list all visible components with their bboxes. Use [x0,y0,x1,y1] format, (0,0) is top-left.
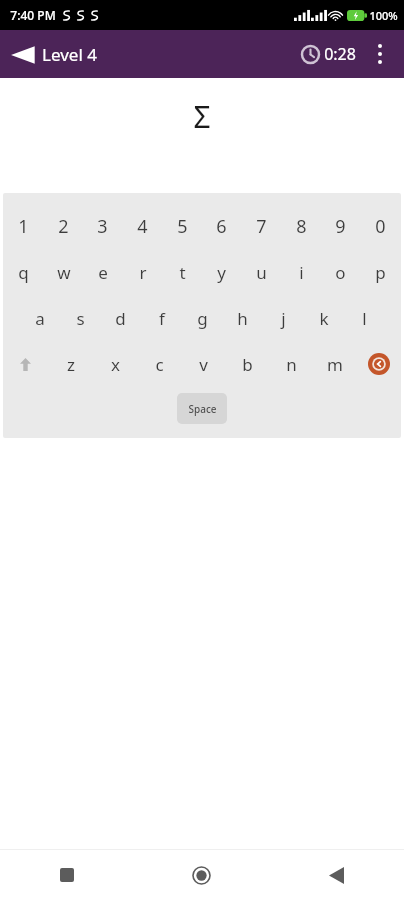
other: Timer [301,45,320,64]
staticText: v [199,353,208,376]
button[interactable]: s [64,303,97,333]
staticText: l [362,307,367,330]
button[interactable]: 3 [86,211,119,241]
button[interactable]: Shift [3,349,48,379]
button[interactable]: v [181,349,225,379]
button[interactable]: i [285,257,318,287]
staticText: j [281,307,286,330]
staticText: c [155,353,164,376]
button[interactable]: Back [269,850,404,900]
staticText: 0:28 [324,43,356,65]
staticText: r [139,261,147,284]
button[interactable]: b [225,349,269,379]
button[interactable]: w [47,257,80,287]
button[interactable]: More options [360,30,400,78]
button[interactable]: u [245,257,278,287]
button[interactable]: 4 [126,211,159,241]
staticText: 6 [216,214,227,239]
staticText: Level 4 [42,43,97,66]
staticText: b [242,353,253,376]
button[interactable]: q [7,257,40,287]
staticText: o [335,261,346,284]
button[interactable]: o [324,257,357,287]
button[interactable]: 2 [47,211,80,241]
button[interactable]: f [145,303,178,333]
button[interactable]: r [126,257,159,287]
button[interactable]: g [186,303,219,333]
button[interactable]: m [313,349,357,379]
staticText: f [159,307,165,330]
staticText: d [115,307,126,330]
button[interactable]: h [226,303,259,333]
staticText: x [111,353,120,376]
staticText: m [327,353,343,376]
staticText: s [76,307,85,330]
other: Back [10,45,36,65]
button[interactable]: Timer [297,37,360,71]
button[interactable]: l [348,303,381,333]
staticText: 0 [375,214,386,239]
button[interactable]: Space [177,393,227,424]
button[interactable]: y [205,257,238,287]
button[interactable]: 8 [285,211,318,241]
button[interactable]: c [137,349,181,379]
button[interactable]: k [307,303,340,333]
staticText: y [217,261,226,284]
staticText: u [256,261,267,284]
staticText: p [375,261,386,284]
staticText: 1 [18,214,29,239]
staticText: 7 [256,214,267,239]
button[interactable]: Backspace [357,349,401,379]
staticText: h [237,307,248,330]
staticText: q [18,261,29,284]
button[interactable]: d [104,303,137,333]
staticText: a [35,307,45,330]
staticText: t [179,261,186,284]
button[interactable]: Home [134,850,269,900]
staticText: k [319,307,329,330]
button[interactable]: e [86,257,119,287]
button[interactable]: a [23,303,56,333]
staticText: e [98,261,108,284]
staticText: n [286,353,297,376]
button[interactable]: t [166,257,199,287]
staticText: z [67,353,75,376]
button[interactable]: 5 [166,211,199,241]
staticText: 8 [296,214,307,239]
staticText: 9 [335,214,346,239]
staticText: i [299,261,304,284]
staticText: g [197,307,208,330]
button[interactable]: 1 [7,211,40,241]
button[interactable]: j [267,303,300,333]
button[interactable]: 0 [364,211,397,241]
button[interactable]: x [93,349,137,379]
button[interactable]: Recent apps [0,850,134,900]
staticText: 2 [58,214,69,239]
button[interactable]: n [269,349,313,379]
staticText: 4 [137,214,148,239]
button[interactable]: p [364,257,397,287]
staticText: Σ [193,96,211,137]
button[interactable]: 7 [245,211,278,241]
button[interactable]: Back [0,37,109,72]
staticText: 3 [97,214,108,239]
button[interactable]: z [48,349,93,379]
staticText: w [57,261,71,284]
staticText: 100% [369,8,398,23]
button[interactable]: 9 [324,211,357,241]
staticText: 7:40 PM [10,7,56,23]
staticText: Space [188,402,217,416]
button[interactable]: 6 [205,211,238,241]
staticText: 5 [177,214,188,239]
